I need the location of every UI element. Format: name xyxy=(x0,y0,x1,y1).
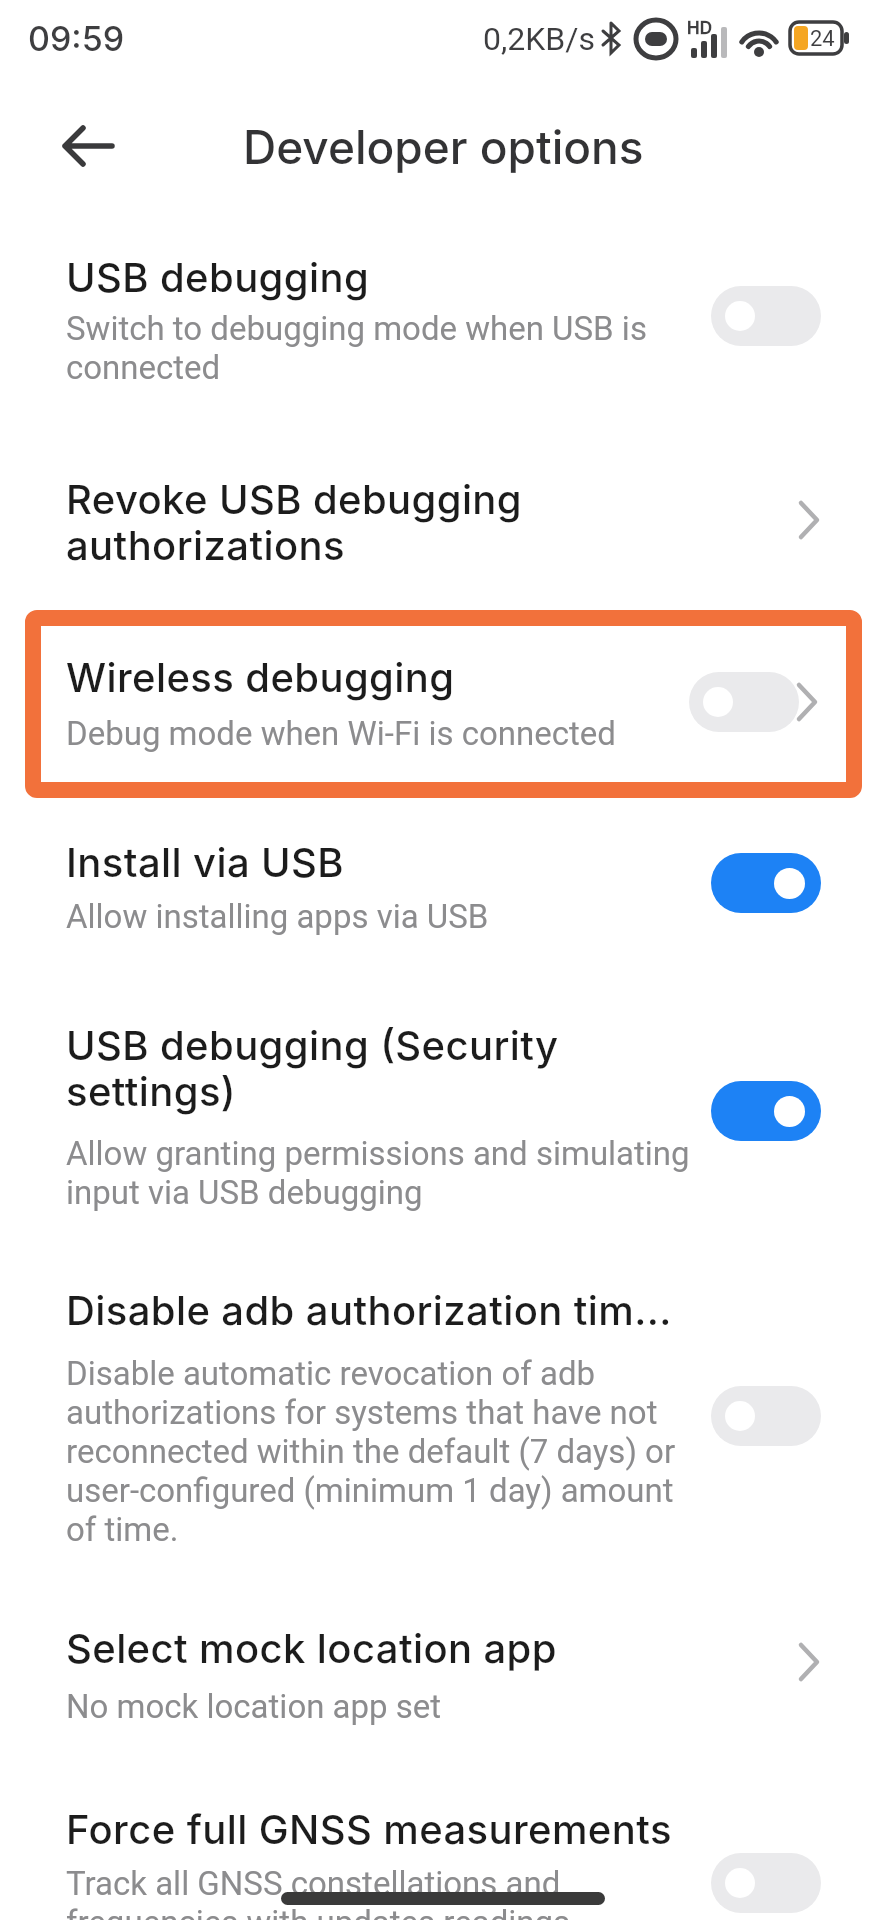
button[interactable] xyxy=(25,610,862,798)
staticText: Track all GNSS constellations and freque… xyxy=(66,1864,571,1920)
staticText: Disable adb authorization tim... xyxy=(66,1286,672,1334)
staticText: Disable automatic revocation of adb auth… xyxy=(66,1354,676,1549)
button[interactable] xyxy=(0,240,886,400)
button[interactable] xyxy=(711,286,821,346)
button[interactable] xyxy=(711,853,821,913)
staticText: USB debugging (Security settings) xyxy=(66,1021,559,1115)
staticText: No mock location app set xyxy=(66,1687,442,1726)
button[interactable] xyxy=(689,672,799,732)
button[interactable] xyxy=(0,460,886,580)
staticText: Force full GNSS measurements xyxy=(66,1805,672,1853)
button[interactable] xyxy=(62,124,116,168)
button[interactable] xyxy=(0,1010,886,1220)
button[interactable] xyxy=(0,1615,886,1730)
button[interactable] xyxy=(0,830,886,950)
staticText: Debug mode when Wi-Fi is connected xyxy=(66,714,616,753)
staticText: Allow installing apps via USB xyxy=(66,897,489,936)
staticText: Switch to debugging mode when USB is con… xyxy=(66,309,647,387)
staticText: 0,2KB/s xyxy=(483,20,595,58)
button[interactable] xyxy=(711,1386,821,1446)
staticText: Revoke USB debugging authorizations xyxy=(66,475,523,569)
staticText: Allow granting permissions and simulatin… xyxy=(66,1134,690,1212)
staticText: USB debugging xyxy=(66,253,370,301)
button[interactable] xyxy=(711,1853,821,1913)
button[interactable] xyxy=(711,1081,821,1141)
button[interactable] xyxy=(0,1795,886,1920)
staticText: Developer options xyxy=(243,119,644,175)
staticText: 24 xyxy=(810,26,835,52)
staticText: Select mock location app xyxy=(66,1624,557,1672)
staticText: Wireless debugging xyxy=(66,653,455,701)
staticText: Install via USB xyxy=(66,838,345,886)
button[interactable] xyxy=(0,1280,886,1550)
staticText: HD xyxy=(687,18,712,39)
staticText: 09:59 xyxy=(28,18,125,59)
